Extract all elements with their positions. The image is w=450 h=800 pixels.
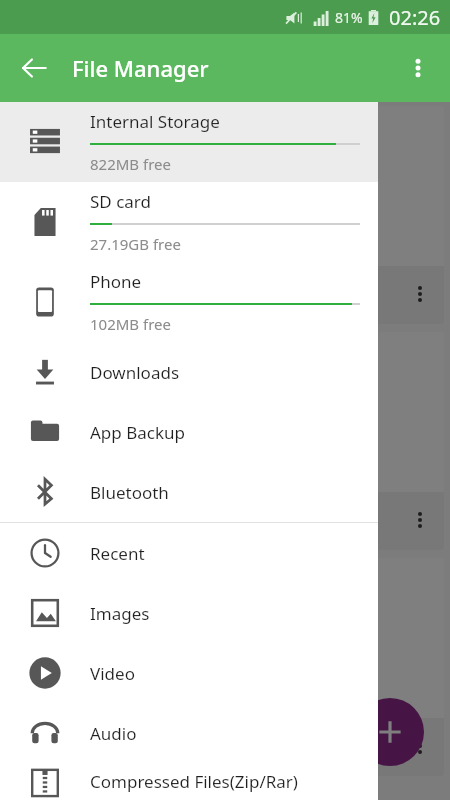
button[interactable]: Audio (0, 703, 378, 763)
staticText: 102MB free (90, 314, 171, 334)
staticText: 822MB free (90, 154, 171, 174)
button[interactable]: Item options (6, 558, 444, 776)
button[interactable]: Internal Storage (0, 102, 378, 182)
staticText: Images (90, 602, 150, 625)
button[interactable]: Item options (404, 278, 436, 310)
staticText: File Manager (72, 53, 209, 83)
staticText: Video (90, 662, 135, 685)
staticText: Downloads (90, 361, 180, 384)
staticText: 02:26 (389, 4, 441, 31)
staticText: Recent (90, 542, 145, 565)
button[interactable]: More options (394, 44, 442, 92)
staticText: Bluetooth (90, 481, 169, 504)
button[interactable]: Recent (0, 523, 378, 583)
button[interactable]: Images (0, 583, 378, 643)
button[interactable]: Item options (6, 106, 444, 324)
button[interactable]: Item options (404, 730, 436, 762)
button[interactable]: Phone (0, 262, 378, 342)
staticText: Audio (90, 722, 137, 745)
button[interactable]: Bluetooth (0, 462, 378, 522)
button[interactable]: Compressed Files(Zip/Rar) (0, 763, 378, 800)
button[interactable]: SD card (0, 182, 378, 262)
staticText: Phone (90, 270, 142, 293)
staticText: 81% (335, 8, 363, 27)
button[interactable]: App Backup (0, 402, 378, 462)
staticText: 27.19GB free (90, 234, 181, 254)
staticText: App Backup (90, 421, 185, 444)
staticText: Compressed Files(Zip/Rar) (90, 770, 298, 793)
button[interactable]: Video (0, 643, 378, 703)
button[interactable]: Back (10, 44, 58, 92)
staticText: SD card (90, 190, 151, 213)
staticText: Internal Storage (90, 110, 220, 133)
button[interactable]: Item options (6, 332, 444, 550)
button[interactable]: Add (356, 698, 424, 766)
button[interactable]: Item options (404, 504, 436, 536)
button[interactable]: Downloads (0, 342, 378, 402)
